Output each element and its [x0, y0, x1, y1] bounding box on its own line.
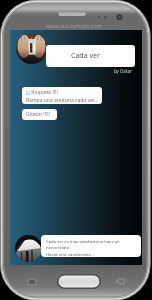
staticText: Cada ver es mas satisfactorio haer un na…: [46, 239, 141, 251]
button[interactable]: Glotón !!!!!: [22, 109, 57, 120]
button[interactable]: Back: [114, 278, 125, 285]
staticText: Cada ver: [71, 51, 100, 61]
staticText: www.stockphoto.com: [46, 23, 103, 30]
button[interactable]: ¡¡¡ Roquete !!!!: [22, 87, 102, 104]
staticText: Glotón !!!!!: [26, 111, 50, 118]
staticText: Rampa una areituna cada ver...: [26, 97, 99, 104]
staticText: by Oskar: [114, 68, 133, 74]
button[interactable]: Cada ver: [46, 45, 135, 67]
staticText: ¡¡¡ Roquete !!!!: [26, 89, 58, 96]
button[interactable]: Menu: [28, 279, 36, 285]
staticText: Hasta otra nanolectate...: [46, 252, 95, 257]
button[interactable]: Cada ver es mas satisfactorio haer un na…: [41, 235, 141, 257]
button[interactable]: Home: [57, 274, 101, 289]
